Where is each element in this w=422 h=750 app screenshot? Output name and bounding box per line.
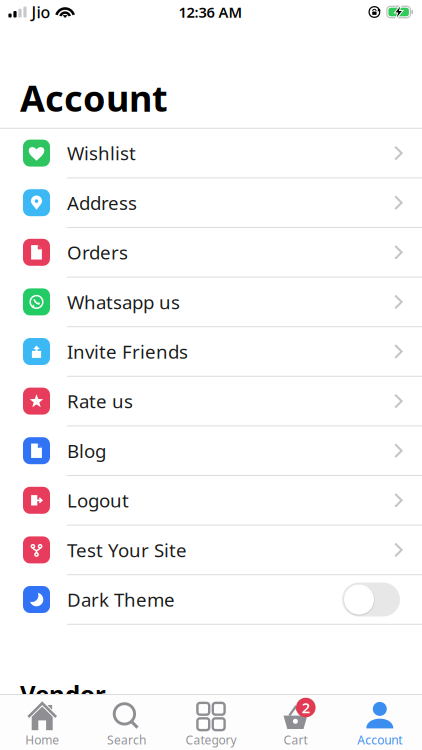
staticText: Dark Theme <box>67 587 175 612</box>
staticText: Vendor <box>20 678 106 710</box>
button[interactable]: Category <box>169 695 253 750</box>
staticText: Blog <box>67 438 106 463</box>
button[interactable]: Account <box>338 695 422 750</box>
staticText: Account <box>20 74 168 122</box>
staticText: Category <box>185 732 236 748</box>
button[interactable]: Whatsapp us <box>0 278 422 327</box>
staticText: Invite Friends <box>67 339 188 364</box>
button[interactable]: Wishlist <box>0 129 422 178</box>
staticText: Wishlist <box>67 141 136 165</box>
button[interactable]: Search <box>84 695 169 750</box>
staticText: Account <box>357 732 402 748</box>
button[interactable]: Home <box>0 695 84 750</box>
staticText: Whatsapp us <box>67 289 180 314</box>
button[interactable]: 2 <box>253 695 338 750</box>
staticText: Jio <box>31 1 50 23</box>
button[interactable]: Orders <box>0 228 422 278</box>
staticText: Address <box>67 190 137 215</box>
button[interactable]: Blog <box>0 426 422 476</box>
button[interactable]: Logout <box>0 476 422 526</box>
button[interactable]: Invite Friends <box>0 327 422 377</box>
staticText: Test Your Site <box>67 537 187 562</box>
staticText: Logout <box>67 488 129 513</box>
staticText: Orders <box>67 240 128 265</box>
staticText: Rate us <box>67 389 133 413</box>
staticText: Home <box>25 732 59 748</box>
staticText: Cart <box>283 732 307 748</box>
button[interactable]: Dark Theme <box>342 582 400 616</box>
staticText: Search <box>107 732 146 748</box>
button[interactable]: Address <box>0 178 422 228</box>
staticText: 12:36 AM <box>178 2 242 22</box>
staticText: 2 <box>302 698 310 717</box>
button[interactable]: Test Your Site <box>0 526 422 575</box>
button[interactable]: Rate us <box>0 377 422 426</box>
